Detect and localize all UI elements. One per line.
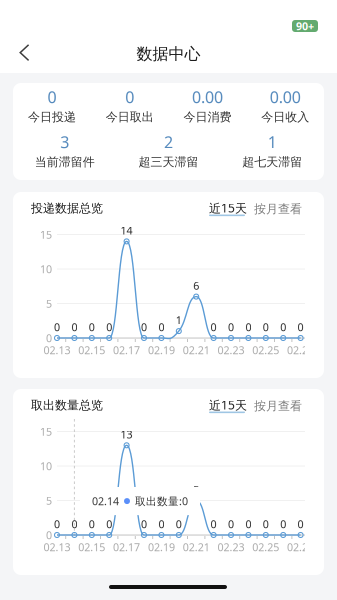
staticText: 02.27 [287, 540, 314, 554]
staticText: 14 [121, 223, 133, 238]
staticText: 02.15 [78, 343, 105, 357]
staticText: 0 [211, 320, 217, 334]
staticText: 0 [228, 517, 234, 531]
staticText: 02.25 [252, 343, 279, 357]
staticText: 0 [245, 320, 251, 334]
staticText: 0 [54, 320, 60, 334]
staticText: 今日取出 [106, 110, 154, 124]
staticText: 0 [71, 320, 77, 334]
staticText: 0 [47, 86, 56, 108]
staticText: 今日投递 [28, 110, 76, 124]
staticText: 90+ [296, 19, 314, 33]
staticText: 0 [228, 320, 234, 334]
staticText: 02.15 [78, 540, 105, 554]
staticText: 5 [46, 296, 52, 311]
staticText: 02.14 [92, 494, 119, 508]
staticText: 02.25 [252, 540, 279, 554]
staticText: 0 [54, 517, 60, 531]
staticText: 按月查看 [254, 399, 302, 413]
staticText: 超七天滞留 [242, 155, 302, 169]
staticText: 5 [46, 493, 52, 508]
staticText: 02.23 [217, 343, 244, 357]
staticText: 02.13 [43, 343, 70, 357]
staticText: 0.00 [192, 86, 223, 108]
button[interactable]: 2 [117, 128, 220, 173]
staticText: 0 [125, 86, 134, 108]
staticText: 取出数量总览 [31, 398, 103, 413]
staticText: 02.21 [183, 343, 210, 357]
staticText: 近15天 [209, 200, 247, 216]
staticText: 取出数量:0 [135, 494, 188, 508]
button[interactable]: Notifications, 90 plus [292, 20, 318, 32]
staticText: 0 [89, 517, 95, 531]
staticText: 15 [40, 424, 52, 439]
staticText: 0 [46, 528, 52, 542]
button[interactable]: 0 [13, 83, 91, 128]
staticText: 6 [193, 279, 199, 293]
button[interactable]: Back [10, 36, 39, 69]
staticText: 按月查看 [254, 202, 302, 216]
button[interactable]: 3 [13, 128, 117, 173]
staticText: 0 [298, 517, 304, 531]
staticText: 今日收入 [261, 110, 309, 124]
staticText: 02.17 [113, 343, 140, 357]
staticText: 02.19 [148, 540, 175, 554]
staticText: 1 [176, 313, 182, 327]
staticText: 02.23 [217, 540, 244, 554]
staticText: 超三天滞留 [138, 155, 198, 169]
staticText: 0 [280, 320, 286, 334]
staticText: 02.13 [43, 540, 70, 554]
button[interactable]: 1 [220, 128, 324, 173]
staticText: 10 [40, 262, 52, 276]
button[interactable]: 0.00 [246, 83, 324, 128]
staticText: 0 [280, 517, 286, 531]
staticText: 0 [211, 517, 217, 531]
staticText: 0 [158, 517, 164, 531]
staticText: 0 [176, 517, 182, 531]
staticText: 0 [263, 517, 269, 531]
staticText: 02.21 [183, 540, 210, 554]
staticText: 0.00 [270, 86, 301, 108]
staticText: 3 [60, 131, 69, 153]
staticText: 15 [40, 227, 52, 242]
button[interactable]: 近15天 [209, 397, 249, 415]
staticText: 0 [89, 320, 95, 334]
button[interactable]: 近15天 [209, 200, 249, 218]
staticText: 2 [164, 131, 173, 153]
staticText: 近15天 [209, 397, 247, 413]
button[interactable]: 按月查看 [254, 397, 304, 415]
staticText: 数据中心 [136, 44, 200, 64]
staticText: 0 [298, 320, 304, 334]
staticText: 0 [141, 320, 147, 334]
staticText: 02.17 [113, 540, 140, 554]
button[interactable]: 0.00 [168, 83, 246, 128]
staticText: 5 [193, 482, 199, 497]
staticText: 0 [263, 320, 269, 334]
staticText: 0 [106, 320, 112, 334]
staticText: 0 [141, 517, 147, 531]
staticText: 0 [106, 517, 112, 531]
staticText: 0 [158, 320, 164, 334]
button[interactable]: 0 [91, 83, 169, 128]
staticText: 今日消费 [183, 110, 231, 124]
staticText: 0 [245, 517, 251, 531]
staticText: 当前滞留件 [35, 155, 95, 169]
staticText: 0 [46, 331, 52, 345]
staticText: 02.27 [287, 343, 314, 357]
button[interactable]: 按月查看 [254, 200, 304, 218]
staticText: 13 [121, 427, 133, 441]
staticText: 10 [40, 459, 52, 473]
staticText: 投递数据总览 [31, 201, 103, 216]
staticText: 1 [268, 131, 277, 153]
staticText: 0 [71, 517, 77, 531]
staticText: 02.19 [148, 343, 175, 357]
